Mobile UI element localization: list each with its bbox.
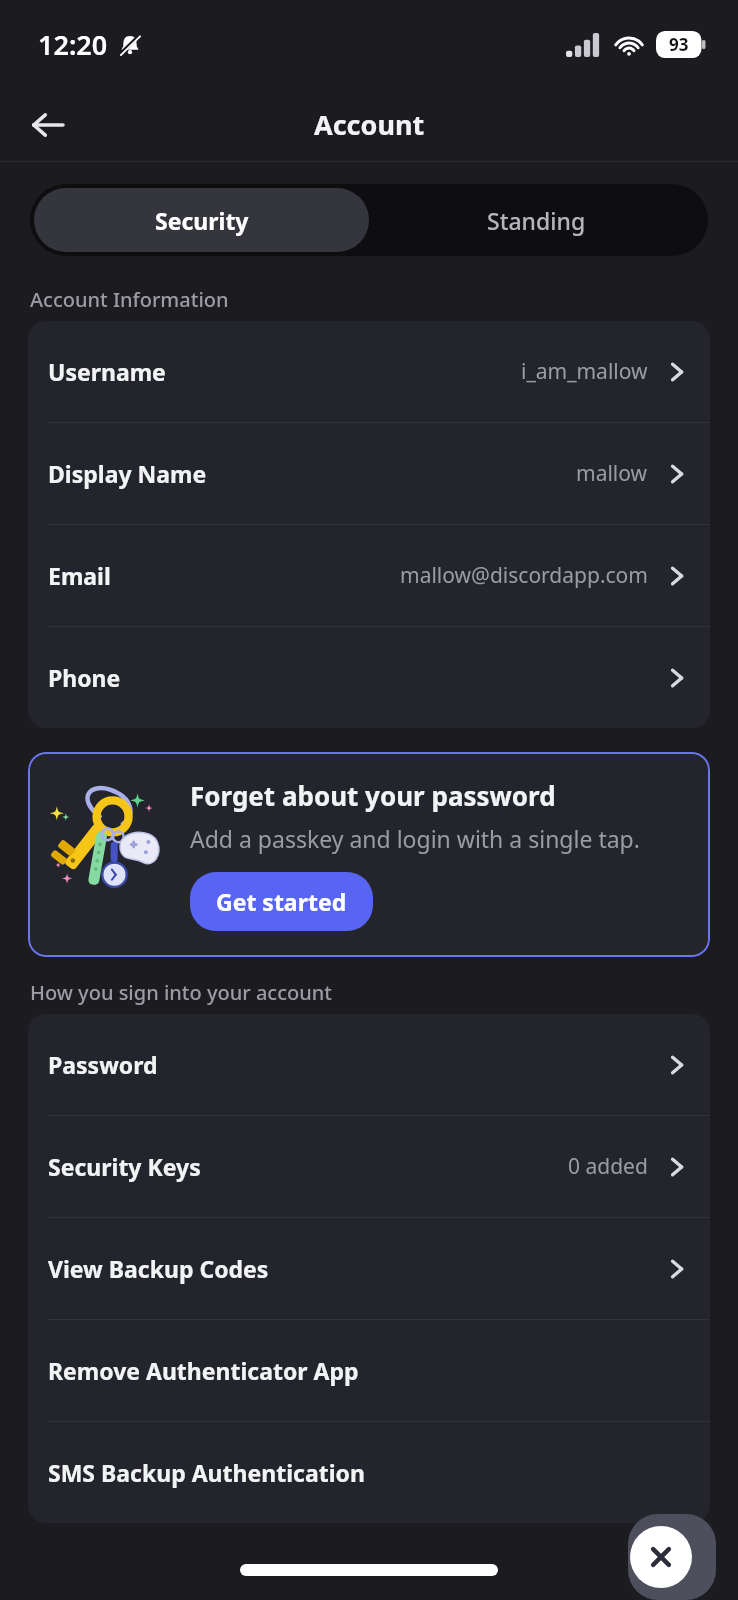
staticText: Account xyxy=(314,106,425,143)
button[interactable]: Security Keys xyxy=(28,1116,710,1217)
staticText: Get started xyxy=(216,886,347,917)
button[interactable]: Standing xyxy=(369,188,704,252)
staticText: Security xyxy=(155,205,249,236)
staticText: 93 xyxy=(669,33,689,56)
button[interactable]: Display Name xyxy=(28,423,710,524)
staticText: Account Information xyxy=(30,286,229,313)
staticText: Phone xyxy=(48,662,121,693)
button[interactable]: SMS Backup Authentication xyxy=(28,1422,710,1523)
staticText: mallow@discordapp.com xyxy=(400,561,648,590)
button[interactable]: Security xyxy=(34,188,369,252)
button[interactable]: Close xyxy=(628,1514,716,1600)
staticText: How you sign into your account xyxy=(30,979,332,1006)
staticText: Password xyxy=(48,1049,158,1080)
staticText: mallow xyxy=(576,459,648,488)
staticText: SMS Backup Authentication xyxy=(48,1457,365,1488)
staticText: View Backup Codes xyxy=(48,1253,269,1284)
button[interactable]: Email xyxy=(28,525,710,626)
button[interactable]: Username xyxy=(28,321,710,422)
button[interactable]: Password xyxy=(28,1014,710,1115)
staticText: Add a passkey and login with a single ta… xyxy=(190,823,640,854)
staticText: 0 added xyxy=(568,1152,648,1181)
staticText: Display Name xyxy=(48,458,207,489)
staticText: Standing xyxy=(487,205,586,236)
staticText: Email xyxy=(48,560,111,591)
button[interactable]: Forget about your password xyxy=(28,752,710,957)
staticText: 12:20 xyxy=(38,26,108,63)
button[interactable]: Phone xyxy=(28,627,710,728)
button[interactable]: Remove Authenticator App xyxy=(28,1320,710,1421)
staticText: Security Keys xyxy=(48,1151,201,1182)
button[interactable]: Back xyxy=(20,97,76,153)
button[interactable]: Get started xyxy=(190,872,373,931)
staticText: Forget about your password xyxy=(190,778,556,813)
staticText: i_am_mallow xyxy=(521,357,648,386)
staticText: Remove Authenticator App xyxy=(48,1355,359,1386)
button[interactable]: View Backup Codes xyxy=(28,1218,710,1319)
staticText: Username xyxy=(48,356,166,387)
